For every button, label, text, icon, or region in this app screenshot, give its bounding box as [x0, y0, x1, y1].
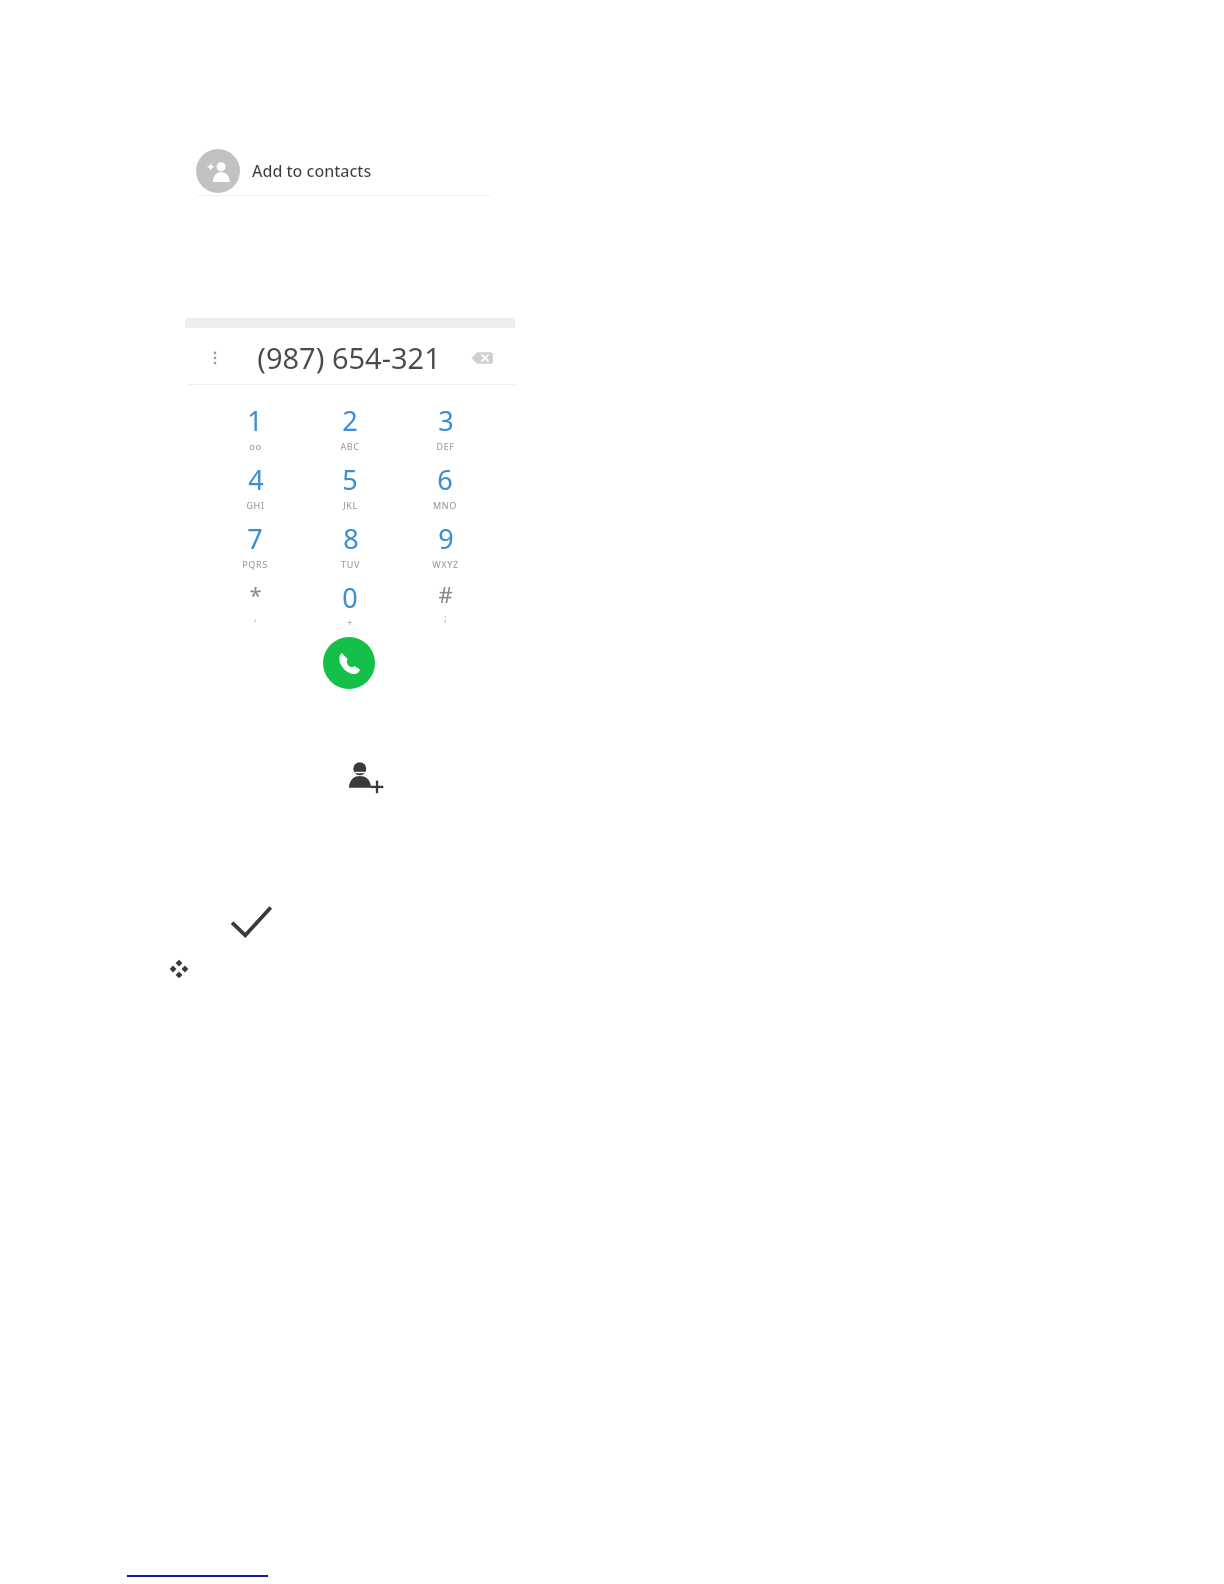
- staticText: 9: [438, 520, 454, 557]
- button[interactable]: More options: [197, 340, 233, 376]
- staticText: GHI: [246, 499, 265, 511]
- staticText: ;: [444, 612, 447, 623]
- button[interactable]: Add contact: [340, 752, 388, 800]
- staticText: 6: [437, 461, 453, 498]
- staticText: 7: [247, 520, 263, 557]
- staticText: PQRS: [242, 558, 268, 570]
- staticText: ABC: [340, 440, 360, 452]
- button[interactable]: #: [411, 579, 479, 629]
- staticText: ᴏᴏ: [249, 440, 262, 452]
- button[interactable]: 1: [221, 402, 289, 452]
- staticText: DEF: [436, 440, 455, 452]
- staticText: MNO: [433, 499, 457, 511]
- staticText: Add to contacts: [252, 160, 372, 182]
- staticText: WXYZ: [432, 558, 459, 570]
- staticText: +: [347, 617, 353, 628]
- staticText: 5: [342, 461, 358, 498]
- button[interactable]: 9: [411, 520, 479, 570]
- button[interactable]: 8: [316, 520, 384, 570]
- staticText: 3: [438, 402, 454, 439]
- staticText: 4: [248, 461, 264, 498]
- button[interactable]: 4: [221, 461, 289, 511]
- button[interactable]: 3: [411, 402, 479, 452]
- button[interactable]: 2: [316, 402, 384, 452]
- staticText: TUV: [341, 558, 360, 570]
- button[interactable]: 0: [316, 579, 384, 629]
- staticText: 8: [343, 520, 359, 557]
- button[interactable]: Call: [323, 637, 375, 689]
- staticText: 1: [247, 402, 263, 439]
- button[interactable]: 6: [411, 461, 479, 511]
- staticText: 0: [342, 579, 358, 616]
- button[interactable]: 5: [316, 461, 384, 511]
- staticText: (987) 654-321: [257, 338, 441, 377]
- button[interactable]: Add to contacts: [196, 148, 490, 194]
- staticText: JKL: [343, 499, 358, 511]
- staticText: ,: [254, 612, 257, 623]
- staticText: #: [438, 579, 453, 609]
- button[interactable]: Backspace: [463, 339, 501, 377]
- button[interactable]: *: [221, 579, 289, 629]
- staticText: 2: [342, 402, 358, 439]
- button[interactable]: 7: [221, 520, 289, 570]
- staticText: *: [249, 579, 262, 609]
- button[interactable]: Done: [225, 897, 277, 949]
